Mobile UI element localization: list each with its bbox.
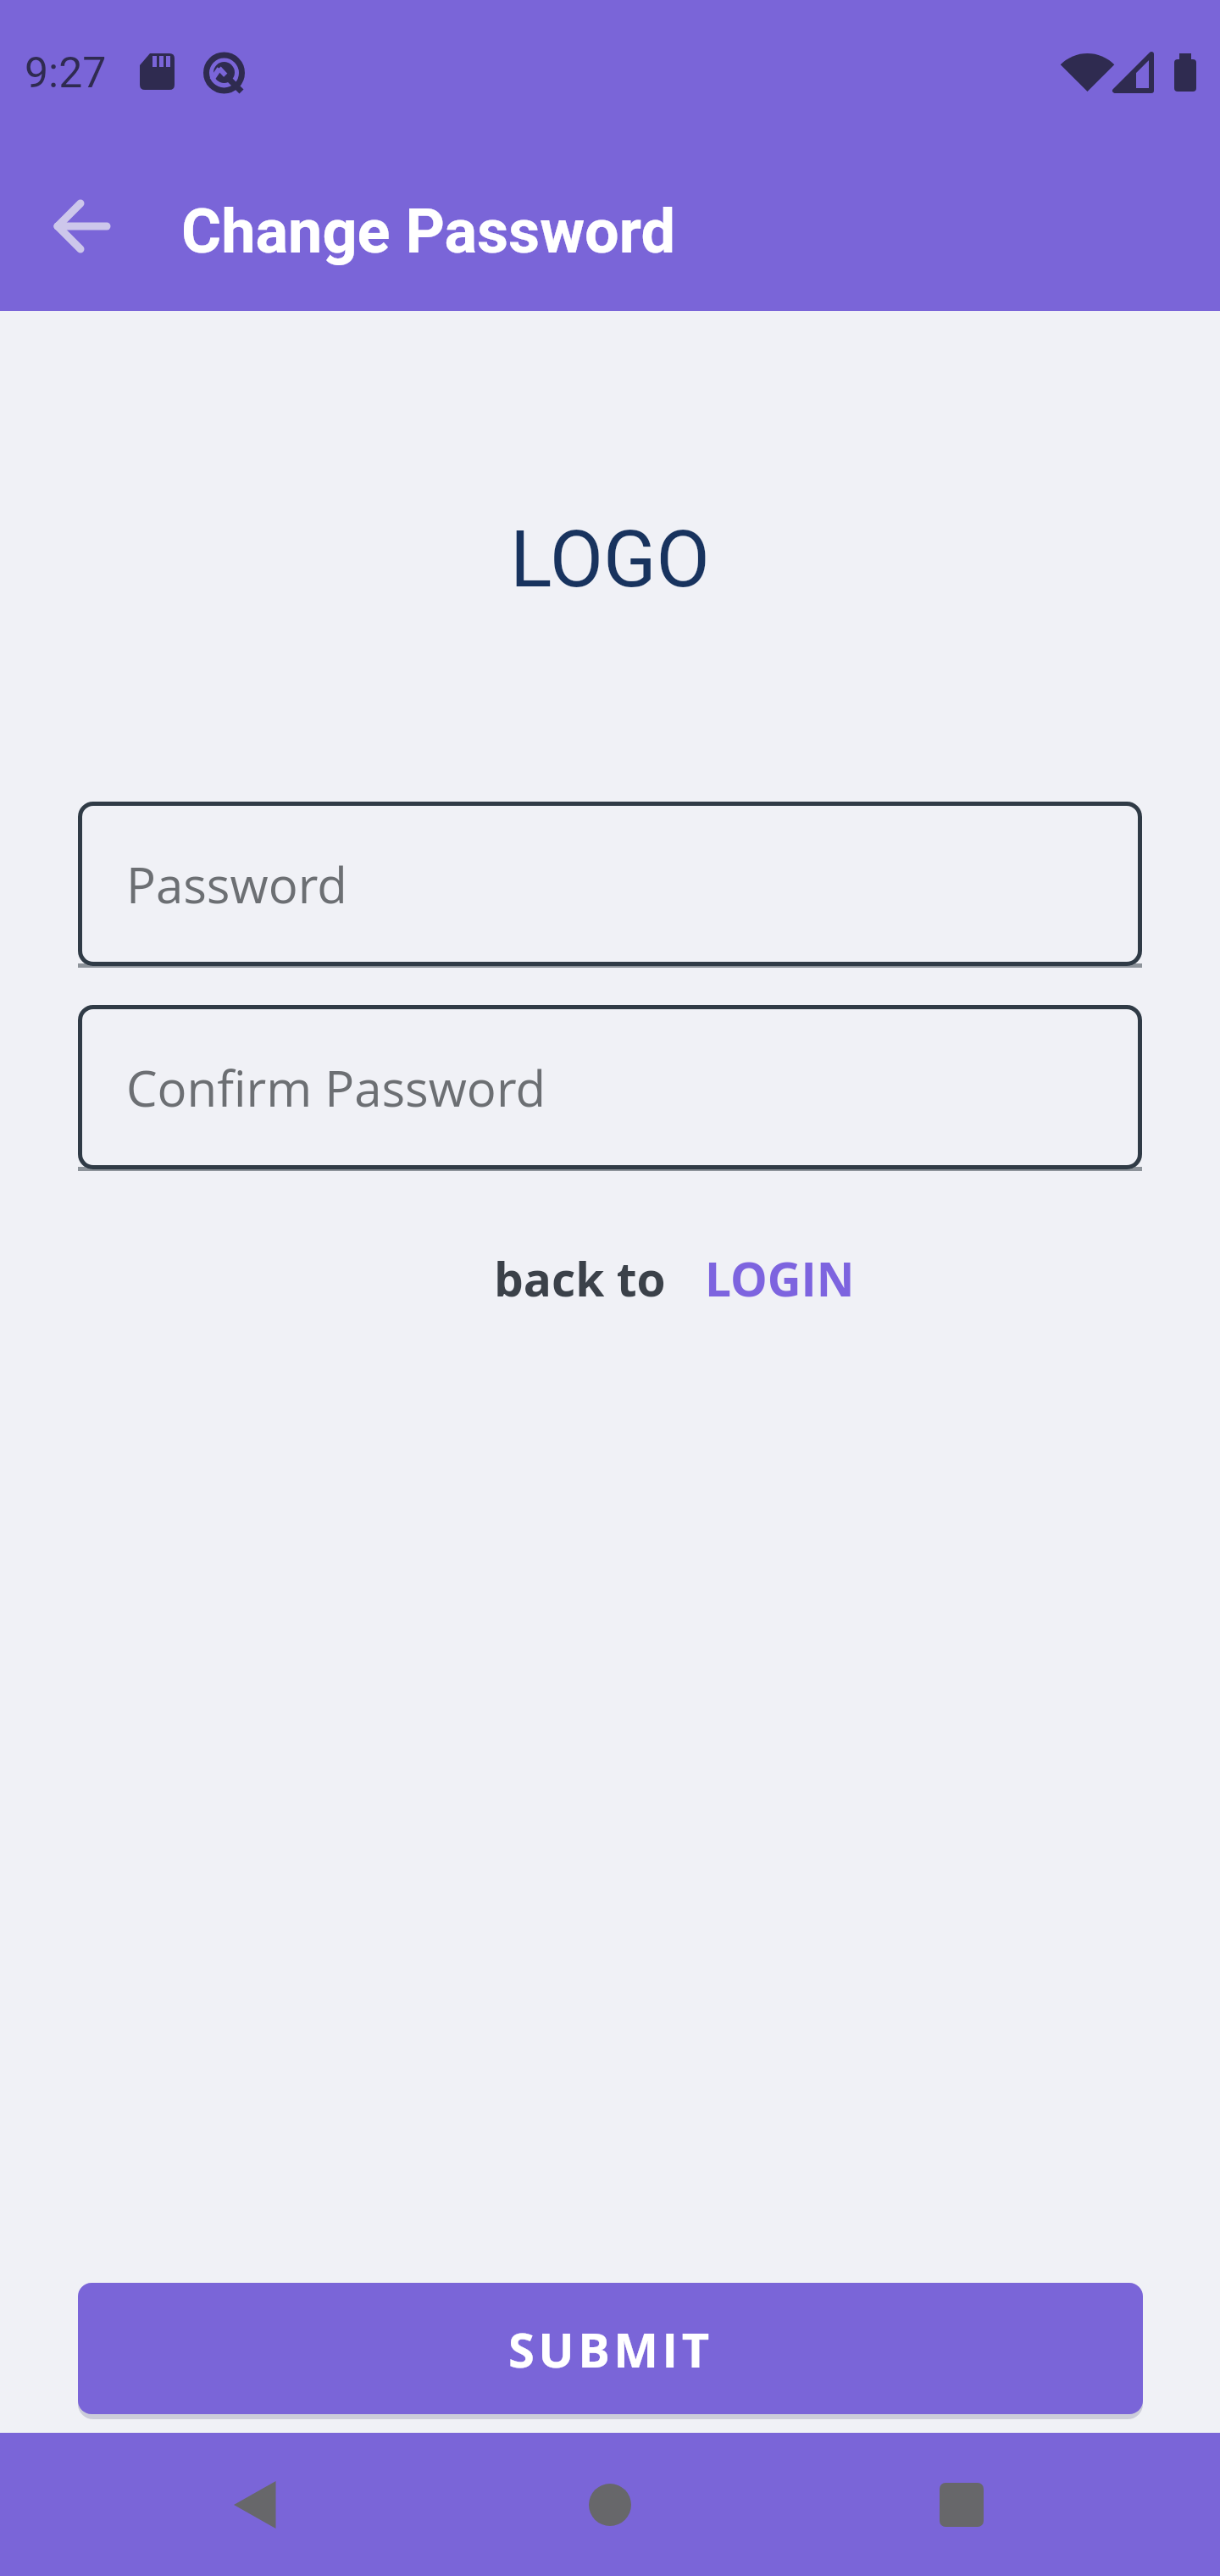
staticText: Confirm Password xyxy=(126,1054,546,1121)
staticText: Change Password xyxy=(181,196,676,267)
staticText: 9:27 xyxy=(25,48,107,98)
button[interactable] xyxy=(813,2433,1220,2576)
button[interactable]: LOGIN xyxy=(705,1246,855,1310)
button[interactable]: SUBMIT xyxy=(78,2283,1143,2414)
staticText: back to xyxy=(494,1246,666,1310)
button[interactable]: Password xyxy=(78,802,1142,966)
button[interactable] xyxy=(42,186,123,267)
staticText: LOGO xyxy=(510,514,710,606)
button[interactable]: Confirm Password xyxy=(78,1005,1142,1169)
button[interactable] xyxy=(407,2433,813,2576)
button[interactable] xyxy=(0,2433,407,2576)
staticText: Password xyxy=(126,851,347,918)
staticText: SUBMIT xyxy=(508,2317,713,2381)
